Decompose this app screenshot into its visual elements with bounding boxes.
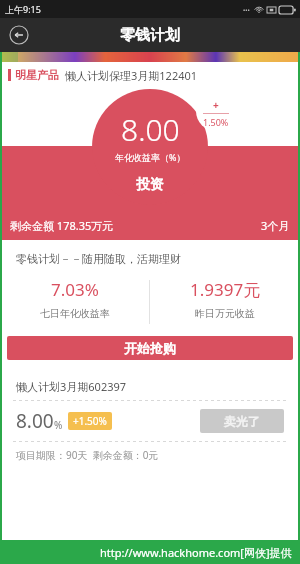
staticText: 7.03% bbox=[51, 278, 99, 301]
staticText: 零钱计划－－随用随取，活期理财 bbox=[16, 252, 300, 266]
staticText: 懒人计划3月期602397 bbox=[16, 379, 127, 394]
staticText: 1.9397元 bbox=[190, 278, 261, 301]
staticText: 卖光了 bbox=[224, 414, 260, 429]
staticText: 8.00 bbox=[16, 408, 54, 434]
staticText: http://www.hackhome.com[网侠]提供 bbox=[100, 545, 292, 560]
button[interactable]: 开始抢购 bbox=[7, 336, 293, 360]
button[interactable]: 明星产品 bbox=[8, 62, 292, 88]
staticText: 投资 bbox=[136, 176, 164, 194]
staticText: +1.50% bbox=[73, 414, 107, 428]
staticText: 1.50% bbox=[203, 116, 229, 128]
staticText: 8.00 bbox=[121, 109, 180, 150]
staticText: ··· bbox=[243, 4, 250, 15]
staticText: 项目期限：90天 剩余金额：0元 bbox=[16, 448, 159, 462]
staticText: 年化收益率（%） bbox=[115, 151, 186, 163]
staticText: + bbox=[213, 98, 219, 112]
staticText: 懒人计划保理3月期122401 bbox=[65, 68, 198, 83]
staticText: 明星产品 bbox=[15, 68, 59, 82]
staticText: 七日年化收益率 bbox=[40, 307, 110, 320]
staticText: % bbox=[54, 418, 63, 432]
button[interactable]: 卖光了 bbox=[200, 409, 284, 433]
button[interactable]: 8.00 bbox=[92, 89, 208, 205]
staticText: 3个月 bbox=[261, 218, 290, 233]
staticText: 上午9:15 bbox=[5, 3, 41, 15]
button[interactable]: Back bbox=[8, 24, 30, 46]
staticText: 开始抢购 bbox=[124, 340, 176, 356]
button[interactable]: 懒人计划3月期602397 bbox=[7, 372, 293, 468]
staticText: 零钱计划 bbox=[120, 26, 180, 45]
staticText: 剩余金额 178.35万元 bbox=[10, 218, 114, 233]
staticText: 昨日万元收益 bbox=[195, 307, 255, 320]
button[interactable]: 零钱计划－－随用随取，活期理财 bbox=[0, 252, 300, 326]
